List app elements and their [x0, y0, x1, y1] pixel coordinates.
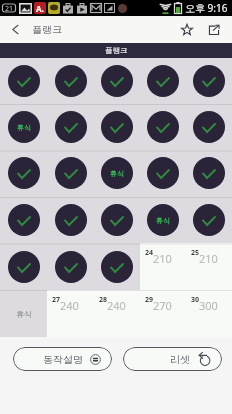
button[interactable] [0, 243, 47, 290]
staticText: 25 [191, 248, 200, 258]
button[interactable] [186, 150, 232, 196]
button[interactable] [47, 58, 94, 104]
staticText: 플랭크 [105, 46, 128, 55]
button[interactable] [94, 243, 140, 290]
button[interactable]: Share [200, 16, 227, 43]
staticText: 휴식 [17, 123, 31, 132]
button[interactable] [186, 196, 232, 243]
button[interactable]: 휴식 [0, 290, 47, 337]
button[interactable] [140, 150, 186, 196]
button[interactable]: 24 [140, 243, 186, 290]
button[interactable] [94, 58, 140, 104]
staticText: 리셋 [170, 353, 190, 366]
button[interactable] [47, 104, 94, 150]
button[interactable]: 리셋 [123, 347, 222, 371]
staticText: 30 [191, 295, 200, 305]
button[interactable]: 25 [186, 243, 232, 290]
button[interactable] [47, 196, 94, 243]
staticText: 휴식 [156, 216, 170, 225]
staticText: 210 [199, 251, 218, 266]
button[interactable] [0, 196, 47, 243]
button[interactable]: 28 [94, 290, 140, 337]
staticText: 오후 9:16 [185, 1, 228, 15]
button[interactable] [47, 150, 94, 196]
staticText: 29 [145, 295, 154, 305]
staticText: 210 [153, 251, 172, 266]
button[interactable]: Back [0, 16, 30, 43]
button[interactable]: 동작설명 [13, 347, 112, 371]
button[interactable]: 30 [186, 290, 232, 337]
button[interactable] [47, 243, 94, 290]
button[interactable] [94, 196, 140, 243]
staticText: 270 [153, 298, 172, 313]
button[interactable] [0, 58, 47, 104]
staticText: 240 [60, 298, 79, 313]
button[interactable] [186, 58, 232, 104]
button[interactable]: 29 [140, 290, 186, 337]
staticText: A. [36, 3, 44, 14]
staticText: 240 [107, 298, 126, 313]
staticText: 21 [5, 4, 14, 14]
staticText: 동작설명 [43, 353, 83, 366]
staticText: 휴식 [16, 309, 32, 319]
button[interactable] [186, 104, 232, 150]
button[interactable] [140, 58, 186, 104]
button[interactable] [94, 104, 140, 150]
button[interactable]: 휴식 [0, 104, 47, 150]
button[interactable]: 휴식 [140, 196, 186, 243]
staticText: 28 [99, 295, 108, 305]
button[interactable] [140, 104, 186, 150]
staticText: 휴식 [110, 169, 124, 178]
button[interactable]: Favorite [173, 16, 200, 43]
button[interactable]: 휴식 [94, 150, 140, 196]
staticText: 24 [145, 248, 154, 258]
button[interactable]: 27 [47, 290, 94, 337]
staticText: 300 [199, 298, 218, 313]
staticText: 27 [52, 295, 61, 305]
button[interactable] [0, 150, 47, 196]
staticText: 플랭크 [32, 23, 62, 36]
